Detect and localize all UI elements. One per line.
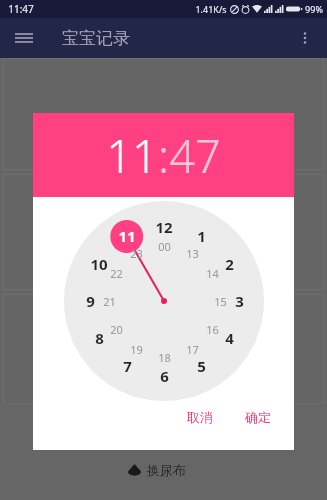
staticText: 2 <box>225 254 234 274</box>
button[interactable]: More options <box>291 24 319 52</box>
button[interactable] <box>4 295 323 403</box>
staticText: 15 <box>214 294 227 309</box>
staticText: 19 <box>130 342 143 357</box>
button[interactable]: 23 <box>123 240 149 266</box>
button[interactable]: 11 <box>114 223 140 249</box>
button[interactable]: 18 <box>151 344 177 370</box>
button[interactable]: 4 <box>216 325 242 351</box>
button[interactable]: 13 <box>179 240 205 266</box>
button[interactable]: 确定 <box>236 404 280 430</box>
staticText: 23 <box>130 246 143 261</box>
staticText: 8 <box>95 328 104 348</box>
button[interactable]: 17 <box>179 336 205 362</box>
staticText: 17 <box>186 342 199 357</box>
button[interactable]: Select minute <box>169 125 221 186</box>
staticText: 11:47 <box>8 2 34 16</box>
staticText: 11 <box>106 125 158 186</box>
button[interactable]: 16 <box>199 316 225 342</box>
button[interactable]: 12 <box>151 214 177 240</box>
staticText: 13 <box>186 246 199 261</box>
staticText: 18 <box>158 350 171 365</box>
staticText: 宝宝记录 <box>62 28 130 49</box>
button[interactable]: 14 <box>199 260 225 286</box>
staticText: 10 <box>90 254 108 274</box>
staticText: : <box>158 125 169 186</box>
staticText: 取消 <box>187 409 213 425</box>
button[interactable]: 19 <box>123 336 149 362</box>
staticText: 11 <box>118 226 136 246</box>
staticText: 47 <box>169 125 221 186</box>
staticText: 14 <box>206 266 219 281</box>
button[interactable]: 6 <box>151 363 177 389</box>
staticText: 21 <box>103 294 116 309</box>
staticText: 99% <box>305 3 323 15</box>
button[interactable]: 取消 <box>178 404 222 430</box>
button[interactable]: 5 <box>188 353 214 379</box>
staticText: 3 <box>235 291 244 311</box>
staticText: 换尿布 <box>147 462 186 478</box>
button[interactable]: 22 <box>103 260 129 286</box>
staticText: 5 <box>197 356 206 376</box>
staticText: 6 <box>160 366 169 386</box>
staticText: 4 <box>225 328 234 348</box>
staticText: 12 <box>155 217 173 237</box>
button[interactable]: 10 <box>86 251 112 277</box>
button[interactable]: 7 <box>114 353 140 379</box>
button[interactable]: 1 <box>188 223 214 249</box>
button[interactable]: 00 <box>151 233 177 259</box>
staticText: 20 <box>110 322 123 337</box>
button[interactable]: 9 <box>77 288 103 314</box>
staticText: 16 <box>206 322 219 337</box>
staticText: 7 <box>123 356 132 376</box>
button[interactable] <box>4 59 323 169</box>
button[interactable]: 3 <box>226 288 252 314</box>
staticText: 1.41K/s <box>195 3 227 15</box>
staticText: 1 <box>197 226 206 246</box>
button[interactable] <box>4 175 323 289</box>
button[interactable]: 21 <box>96 288 122 314</box>
button[interactable]: 15 <box>207 288 233 314</box>
button[interactable]: 8 <box>86 325 112 351</box>
button[interactable]: Open navigation menu <box>10 24 38 52</box>
button[interactable]: Select hour <box>106 125 158 186</box>
staticText: 00 <box>158 239 171 254</box>
button[interactable]: 20 <box>103 316 129 342</box>
staticText: 确定 <box>245 409 271 425</box>
button[interactable]: 2 <box>216 251 242 277</box>
staticText: 9 <box>86 291 95 311</box>
staticText: 22 <box>110 266 123 281</box>
